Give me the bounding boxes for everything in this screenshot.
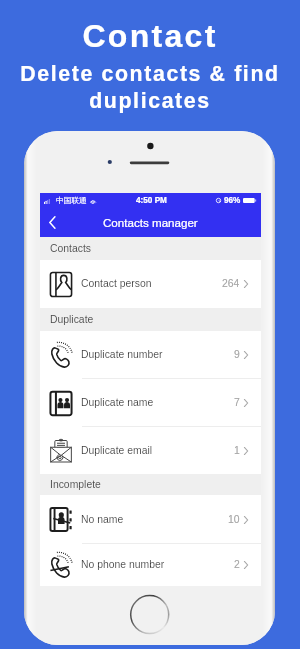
staticText: Duplicate name (81, 397, 154, 409)
staticText: 96% (224, 196, 241, 205)
staticText: 264 (222, 278, 240, 290)
button[interactable]: Duplicate number (40, 331, 261, 379)
staticText: Incomplete (50, 479, 101, 491)
button[interactable]: Contact person (40, 260, 261, 308)
staticText: 7 (234, 397, 240, 409)
button[interactable]: No phone number (40, 544, 261, 586)
staticText: 9 (234, 349, 240, 361)
staticText: Contact (82, 18, 218, 54)
staticText: Duplicate (50, 314, 94, 326)
staticText: Contacts manager (103, 216, 198, 229)
staticText: No name (81, 514, 124, 526)
staticText: 中国联通 (56, 196, 87, 206)
staticText: Contact person (81, 278, 152, 290)
button[interactable]: Duplicate email (40, 427, 261, 474)
button[interactable]: Duplicate name (40, 379, 261, 427)
staticText: 4:50 PM (136, 196, 167, 205)
staticText: Delete contacts & find duplicates (19, 62, 281, 113)
button[interactable]: Back (40, 208, 64, 237)
staticText: Duplicate email (81, 445, 153, 457)
staticText: Contacts (50, 243, 92, 255)
staticText: 2 (234, 559, 240, 571)
staticText: 1 (234, 445, 240, 457)
staticText: 10 (228, 514, 240, 526)
button[interactable]: No name (40, 495, 261, 544)
staticText: Duplicate number (81, 349, 163, 361)
staticText: No phone number (81, 559, 165, 571)
